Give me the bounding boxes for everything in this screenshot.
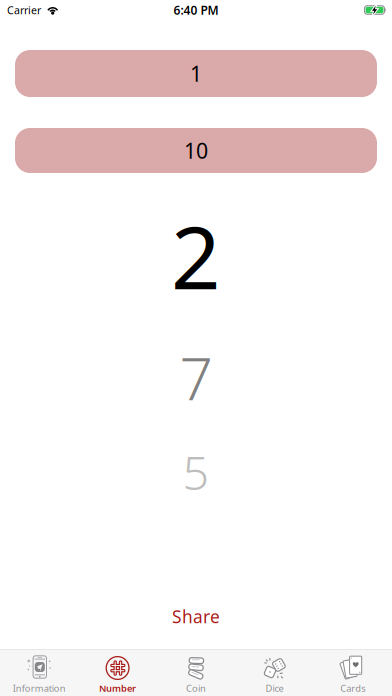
- staticText: 6:40 PM: [173, 2, 218, 18]
- button[interactable]: Number: [78, 650, 157, 696]
- staticText: Carrier: [7, 3, 41, 17]
- staticText: Share: [172, 605, 220, 628]
- button[interactable]: Share: [148, 604, 244, 628]
- staticText: 10: [184, 136, 208, 165]
- staticText: Dice: [265, 682, 283, 694]
- staticText: Number: [99, 682, 136, 694]
- staticText: 7: [179, 338, 212, 416]
- button[interactable]: 10: [15, 128, 377, 173]
- button[interactable]: Coin: [157, 650, 235, 696]
- staticText: Information: [13, 682, 66, 694]
- button[interactable]: Information: [0, 650, 78, 696]
- button[interactable]: 1: [15, 50, 377, 97]
- button[interactable]: Dice: [235, 650, 314, 696]
- staticText: Cards: [340, 682, 365, 694]
- button[interactable]: Cards: [314, 650, 392, 696]
- staticText: Coin: [186, 682, 206, 694]
- staticText: 2: [171, 198, 221, 313]
- staticText: 1: [190, 59, 202, 88]
- staticText: 5: [182, 441, 209, 503]
